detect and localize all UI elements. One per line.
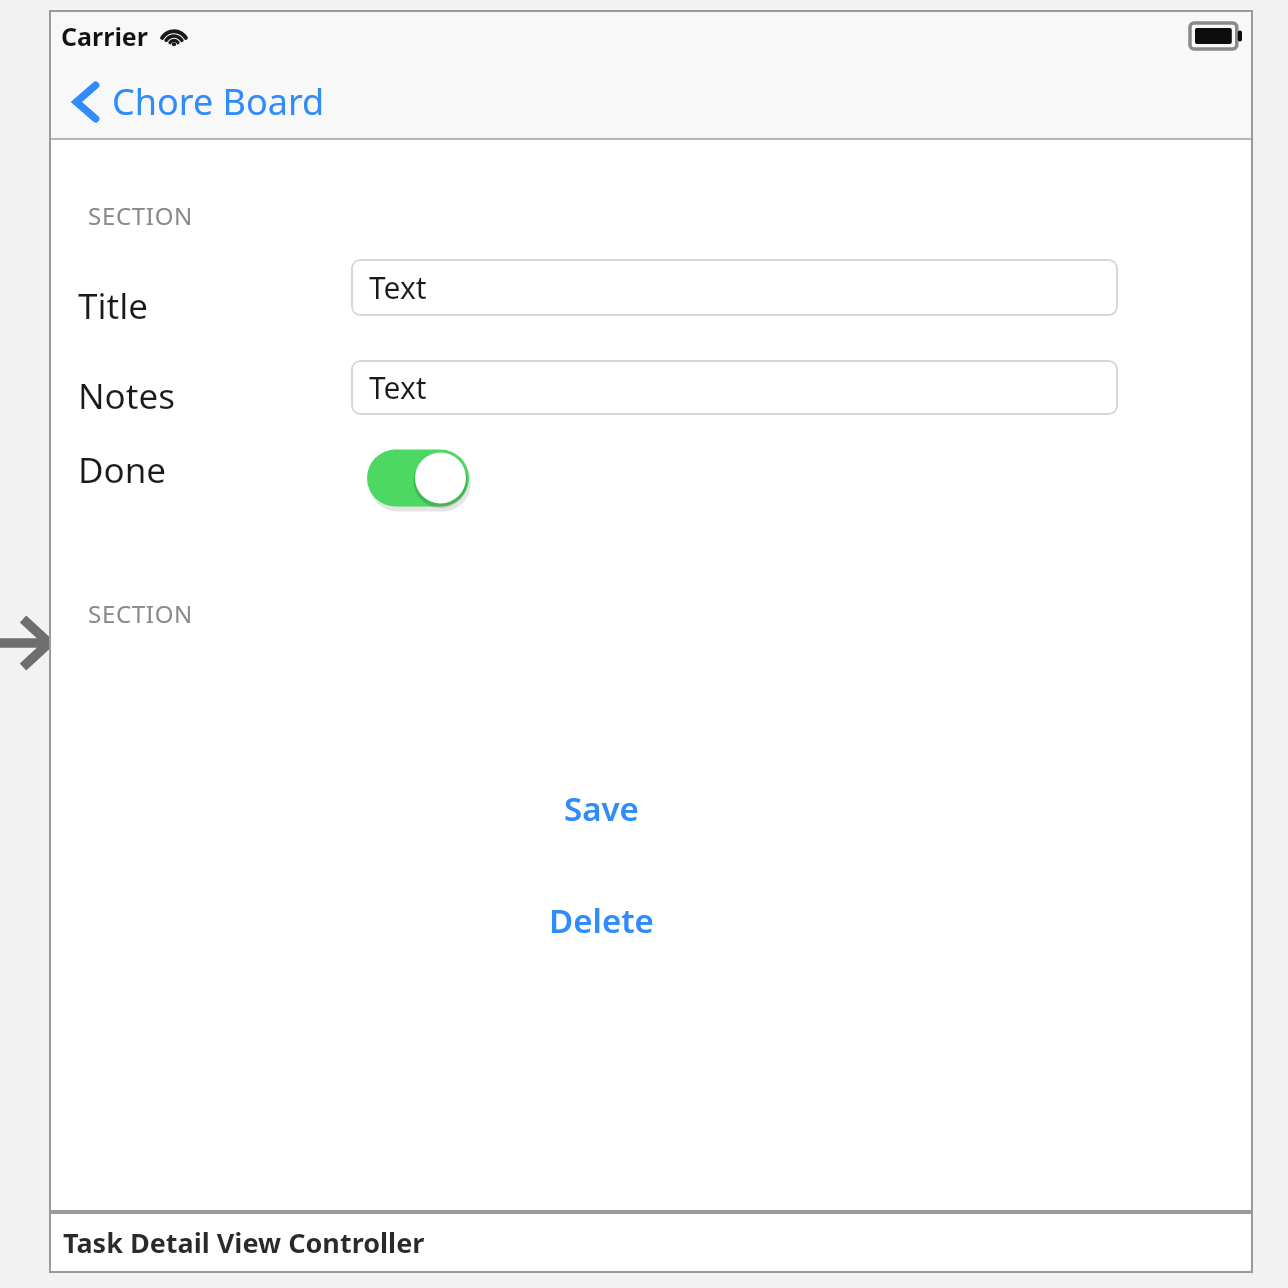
staticText: Save	[564, 786, 639, 831]
button[interactable]: Delete	[49, 890, 1253, 950]
staticText: Delete	[549, 898, 654, 943]
staticText: Done	[78, 446, 167, 494]
staticText: Notes	[78, 372, 175, 420]
button[interactable]: Save	[49, 778, 1253, 838]
staticText: SECTION	[88, 597, 194, 630]
staticText: Chore Board	[112, 77, 325, 126]
button[interactable]: Back	[67, 71, 329, 132]
other: Back	[71, 81, 101, 123]
button[interactable]: Text	[351, 259, 1118, 316]
staticText: Title	[78, 282, 148, 330]
button[interactable]: Done toggle, on	[360, 443, 476, 513]
staticText: Text	[369, 367, 427, 408]
button[interactable]: Text	[351, 360, 1118, 415]
staticText: Carrier	[61, 19, 148, 53]
staticText: SECTION	[88, 199, 194, 232]
staticText: Text	[369, 267, 427, 308]
staticText: Task Detail View Controller	[63, 1224, 425, 1261]
